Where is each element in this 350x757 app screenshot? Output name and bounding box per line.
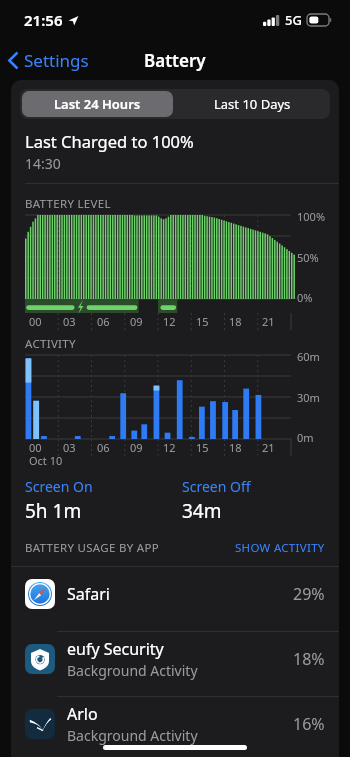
- staticText: 0%: [297, 290, 313, 305]
- staticText: 60m: [297, 349, 320, 364]
- staticText: 29%: [293, 583, 325, 605]
- staticText: Background Activity: [67, 661, 198, 680]
- staticText: ACTIVITY: [25, 336, 76, 352]
- staticText: 00: [29, 440, 42, 455]
- staticText: 21: [262, 440, 275, 455]
- button[interactable]: Settings: [0, 45, 97, 76]
- staticText: 21:56: [24, 10, 63, 30]
- staticText: 06: [97, 314, 110, 329]
- staticText: 18: [229, 314, 242, 329]
- staticText: 03: [63, 440, 76, 455]
- staticText: Battery: [144, 49, 206, 72]
- staticText: 100%: [297, 209, 326, 224]
- staticText: 15: [196, 440, 209, 455]
- staticText: Screen On: [25, 477, 93, 496]
- staticText: 15: [196, 314, 209, 329]
- staticText: 18: [229, 440, 242, 455]
- button[interactable]: Screen Off: [182, 477, 339, 524]
- staticText: Background Activity: [67, 726, 198, 745]
- button[interactable]: SHOW ACTIVITY: [235, 540, 325, 556]
- staticText: Settings: [24, 49, 89, 72]
- staticText: 00: [29, 314, 42, 329]
- staticText: Last 10 Days: [214, 95, 291, 113]
- staticText: 12: [163, 440, 176, 455]
- button[interactable]: eufy Security: [11, 632, 339, 686]
- button[interactable]: Safari: [11, 567, 339, 621]
- staticText: 50%: [297, 250, 319, 265]
- staticText: eufy Security: [67, 638, 164, 660]
- staticText: Last 24 Hours: [54, 95, 141, 113]
- staticText: SHOW ACTIVITY: [235, 540, 325, 556]
- staticText: 5h 1m: [25, 498, 82, 524]
- staticText: 21: [262, 314, 275, 329]
- staticText: 14:30: [25, 154, 61, 173]
- button[interactable]: Last 10 Days: [175, 89, 330, 119]
- staticText: Safari: [67, 583, 110, 605]
- staticText: 09: [130, 314, 143, 329]
- staticText: 06: [97, 440, 110, 455]
- staticText: 0m: [297, 430, 314, 445]
- staticText: BATTERY USAGE BY APP: [25, 540, 159, 556]
- staticText: 12: [163, 314, 176, 329]
- staticText: 34m: [182, 498, 222, 524]
- staticText: Oct 10: [29, 453, 63, 468]
- button[interactable]: Last 24 Hours: [22, 91, 173, 117]
- staticText: 16%: [293, 713, 325, 735]
- staticText: 03: [63, 314, 76, 329]
- staticText: Arlo: [67, 703, 98, 725]
- staticText: 09: [130, 440, 143, 455]
- staticText: Last Charged to 100%: [25, 130, 194, 152]
- staticText: Screen Off: [182, 477, 251, 496]
- staticText: 30m: [297, 390, 320, 405]
- staticText: 5G: [285, 11, 302, 29]
- button[interactable]: Arlo: [11, 697, 339, 751]
- button[interactable]: Screen On: [25, 477, 182, 524]
- staticText: BATTERY LEVEL: [25, 196, 111, 212]
- staticText: 18%: [293, 648, 325, 670]
